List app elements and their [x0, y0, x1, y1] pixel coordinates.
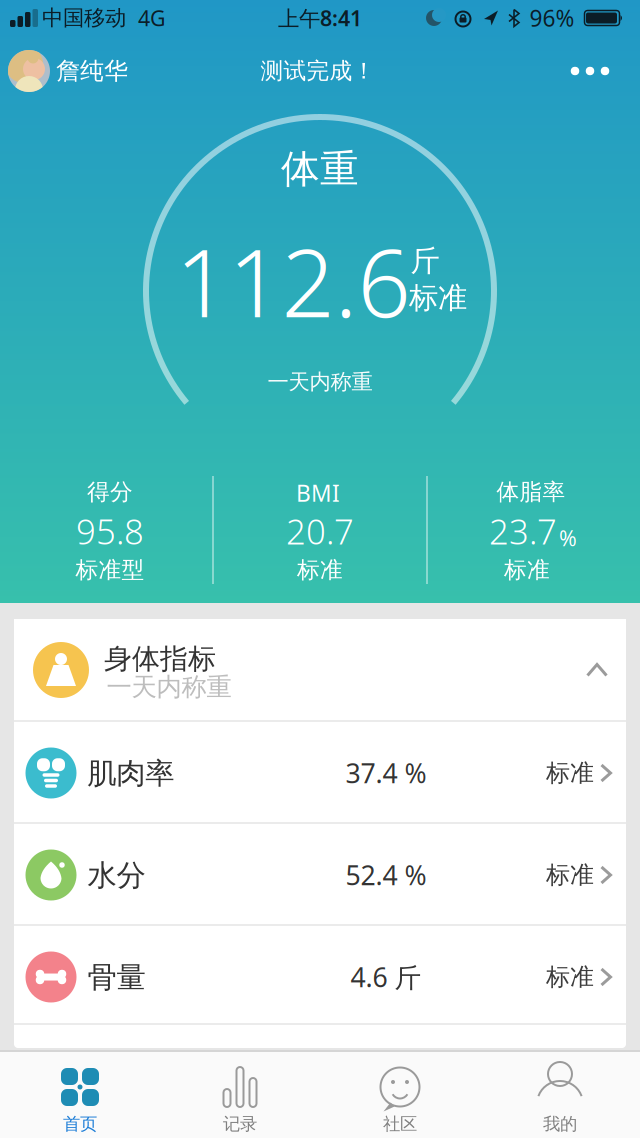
- staticText: 4G: [138, 4, 166, 32]
- staticText: 肌肉率: [87, 755, 174, 791]
- staticText: 标准: [546, 962, 594, 992]
- button[interactable]: 记录: [160, 1052, 320, 1138]
- button[interactable]: 肌肉率: [14, 721, 626, 823]
- staticText: 96%: [529, 3, 574, 33]
- staticText: 标准: [546, 758, 594, 788]
- staticText: 记录: [223, 1113, 257, 1135]
- staticText: 斤: [410, 243, 439, 279]
- button[interactable]: 身体指标: [14, 619, 626, 720]
- staticText: 112.6: [175, 219, 410, 343]
- staticText: 20.7: [286, 508, 354, 554]
- staticText: 体重: [281, 145, 359, 193]
- staticText: 中国移动: [42, 5, 126, 31]
- staticText: 23.7: [489, 508, 557, 554]
- staticText: BMI: [296, 478, 340, 508]
- staticText: 4.6 斤: [350, 959, 421, 995]
- button[interactable]: 首页: [0, 1052, 160, 1138]
- button[interactable]: 骨量: [14, 925, 626, 1027]
- button[interactable]: 个人资料: [8, 48, 128, 94]
- staticText: 标准型: [75, 556, 144, 584]
- staticText: 52.4 %: [345, 857, 426, 893]
- staticText: 得分: [87, 478, 133, 506]
- staticText: 测试完成！: [260, 57, 375, 85]
- staticText: 水分: [87, 857, 145, 893]
- button[interactable]: 我的: [480, 1052, 640, 1138]
- staticText: %: [559, 524, 577, 552]
- staticText: 身体指标: [104, 642, 216, 676]
- staticText: 标准: [504, 556, 550, 584]
- staticText: 首页: [63, 1113, 97, 1135]
- staticText: 标准: [409, 280, 467, 316]
- staticText: 我的: [543, 1113, 577, 1135]
- button[interactable]: 水分: [14, 823, 626, 925]
- button[interactable]: 更多: [560, 51, 620, 91]
- staticText: 一天内称重: [267, 369, 372, 395]
- staticText: 骨量: [87, 959, 145, 995]
- staticText: 标准: [546, 860, 594, 890]
- staticText: 95.8: [76, 508, 144, 554]
- staticText: 上午8:41: [278, 4, 362, 32]
- staticText: 体脂率: [496, 478, 565, 506]
- staticText: 37.4 %: [345, 755, 426, 791]
- staticText: 社区: [383, 1113, 417, 1135]
- staticText: 一天内称重: [106, 671, 231, 702]
- staticText: 标准: [297, 556, 343, 584]
- staticText: 詹纯华: [56, 56, 128, 86]
- button[interactable]: 社区: [320, 1052, 480, 1138]
